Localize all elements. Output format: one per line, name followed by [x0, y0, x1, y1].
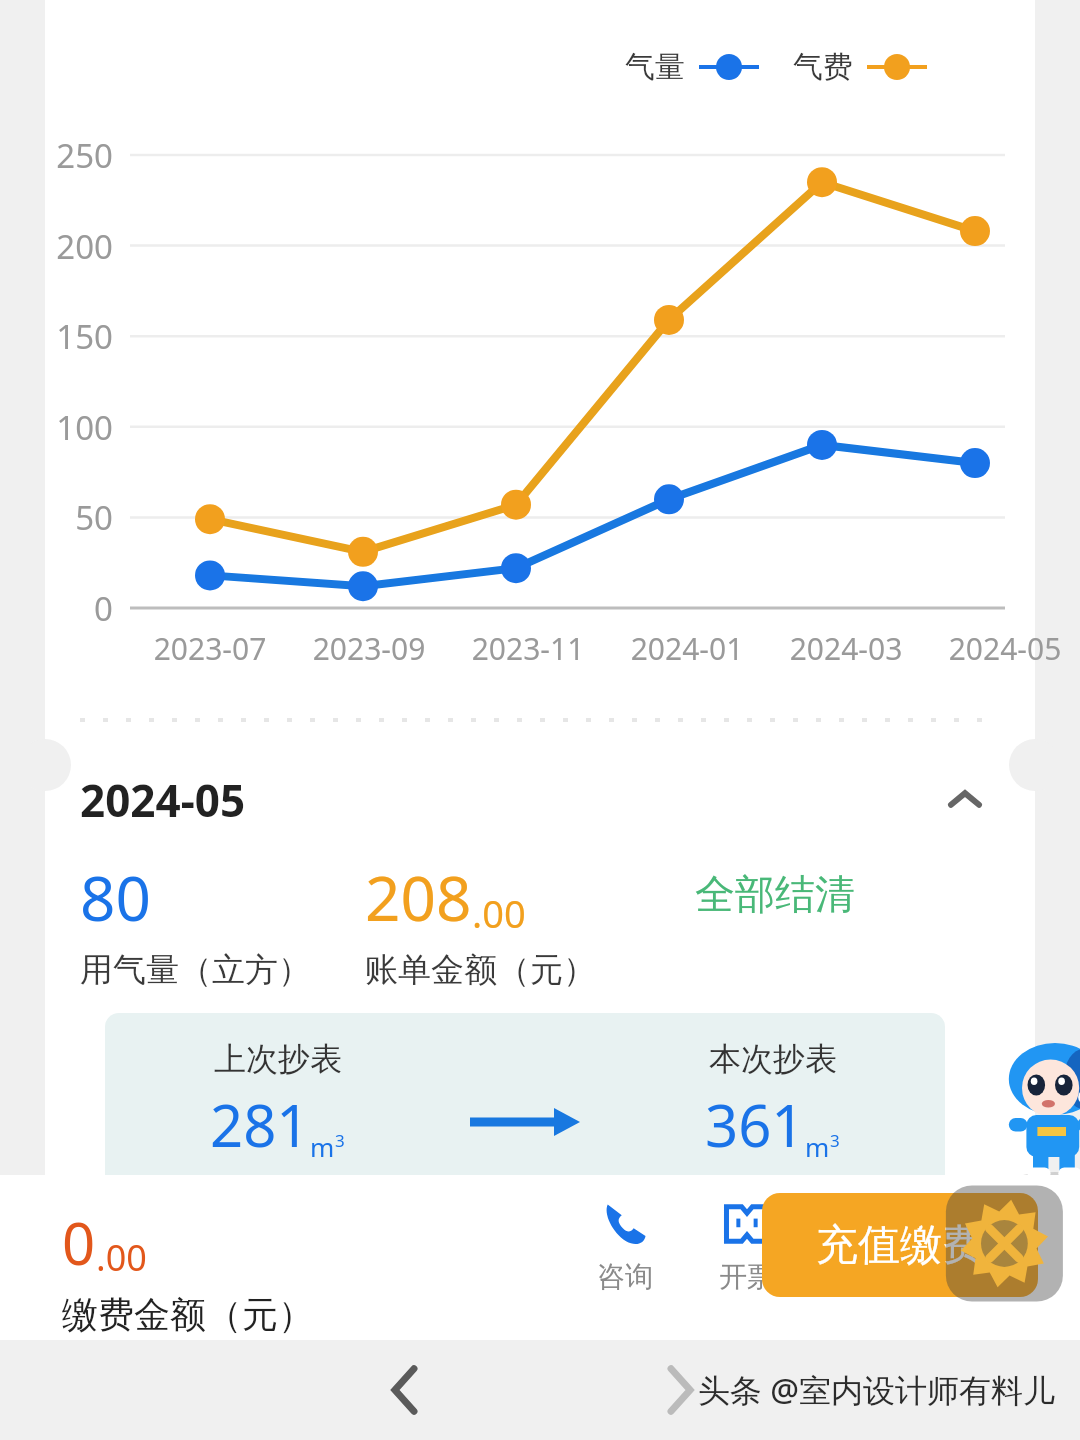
- staticText: 开票: [719, 1259, 775, 1294]
- staticText: 281: [210, 1085, 310, 1164]
- staticText: 2024-01: [602, 628, 772, 669]
- button[interactable]: 开票: [697, 1193, 797, 1298]
- button[interactable]: Collapse: [930, 765, 1000, 835]
- staticText: m: [310, 1129, 335, 1164]
- button[interactable]: 上次抄表: [105, 1013, 945, 1175]
- staticText: 2024-05: [80, 770, 246, 830]
- staticText: 用气量（立方）: [80, 949, 311, 991]
- staticText: 2023-07: [125, 628, 295, 669]
- staticText: 2023-11: [443, 628, 613, 669]
- staticText: 气量: [625, 48, 685, 86]
- button[interactable]: Back: [360, 1345, 450, 1435]
- staticText: 80: [80, 855, 151, 939]
- staticText: 100: [45, 405, 113, 450]
- staticText: 上次抄表: [214, 1039, 342, 1079]
- staticText: 0: [62, 1203, 96, 1282]
- staticText: 本次抄表: [709, 1039, 837, 1079]
- button[interactable]: Forward: [635, 1345, 725, 1435]
- button[interactable]: 咨询: [575, 1193, 675, 1298]
- staticText: 208: [365, 855, 472, 939]
- staticText: 3: [335, 1129, 345, 1152]
- staticText: 充值缴费: [816, 1219, 984, 1272]
- staticText: 气费: [793, 48, 853, 86]
- staticText: 2023-09: [284, 628, 454, 669]
- staticText: 0: [45, 586, 113, 631]
- staticText: 50: [45, 495, 113, 540]
- staticText: 咨询: [597, 1259, 653, 1294]
- staticText: 150: [45, 314, 113, 359]
- staticText: 361: [705, 1085, 805, 1164]
- staticText: 账单金额（元）: [365, 949, 596, 991]
- staticText: 2024-03: [761, 628, 931, 669]
- staticText: 全部结清: [695, 869, 855, 919]
- staticText: 头条 @室内设计师有料儿: [698, 1368, 1056, 1412]
- staticText: 3: [830, 1129, 840, 1152]
- staticText: .00: [96, 1233, 147, 1282]
- staticText: 200: [45, 224, 113, 269]
- staticText: 250: [45, 133, 113, 178]
- staticText: 缴费金额（元）: [62, 1292, 314, 1337]
- staticText: 2024-05: [920, 628, 1080, 669]
- staticText: m: [805, 1129, 830, 1164]
- staticText: .00: [472, 887, 526, 939]
- button[interactable]: 充值缴费: [762, 1193, 1038, 1297]
